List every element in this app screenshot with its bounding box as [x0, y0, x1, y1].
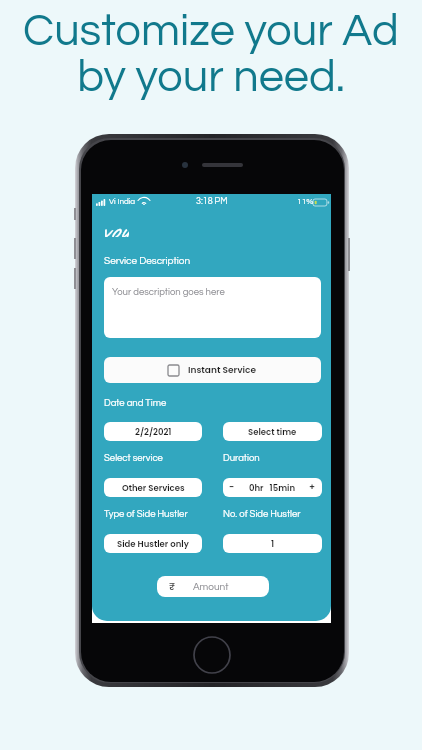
staticText: No. of Side Hustler [223, 509, 301, 519]
button[interactable]: Instant Service [104, 357, 321, 383]
other: Home [193, 636, 231, 674]
button[interactable]: vou [103, 215, 133, 239]
staticText: ₹ [169, 580, 175, 593]
button[interactable]: - [223, 478, 322, 497]
staticText: Type of Side Hustler [104, 509, 188, 519]
staticText: Vi India [109, 197, 136, 205]
staticText: 11% [297, 197, 314, 206]
button[interactable]: 2/2/2021 [104, 422, 202, 441]
button[interactable]: Select time [223, 422, 322, 441]
button[interactable]: 1 [223, 534, 322, 553]
staticText: vou [100, 213, 129, 237]
staticText: Duration [223, 453, 260, 463]
staticText: 1 [271, 538, 275, 550]
staticText: Your description goes here [112, 287, 225, 297]
staticText: Instant Service [188, 364, 257, 377]
staticText: Date and Time [104, 398, 167, 408]
staticText: - [229, 481, 235, 494]
button[interactable]: Your description goes here [104, 277, 321, 338]
staticText: by your need. [77, 54, 345, 100]
staticText: Side Hustler only [117, 538, 189, 550]
staticText: Amount [193, 582, 229, 592]
staticText: Customize your Ad [23, 8, 399, 54]
staticText: 2/2/2021 [135, 426, 172, 438]
staticText: 0hr 15min [249, 482, 296, 494]
staticText: Select time [248, 426, 297, 438]
button[interactable]: Side Hustler only [104, 534, 202, 553]
button[interactable]: Other Services [104, 478, 202, 497]
staticText: + [309, 481, 316, 494]
staticText: Select service [104, 453, 163, 463]
button[interactable]: ₹ [157, 576, 269, 597]
staticText: Other Services [122, 482, 185, 494]
staticText: 3:18 PM [196, 197, 228, 206]
staticText: Service Description [104, 256, 191, 266]
